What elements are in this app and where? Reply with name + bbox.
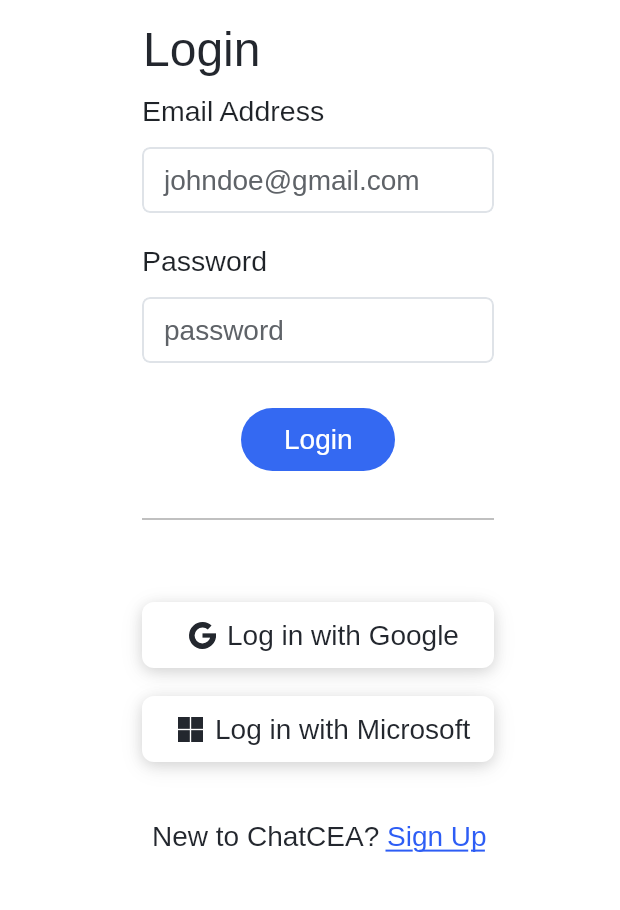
staticText: Login: [143, 23, 261, 77]
staticText: Password: [142, 245, 268, 277]
staticText: Log in with Microsoft: [215, 714, 471, 745]
staticText: Log in with Google: [227, 620, 459, 651]
staticText: johndoe@gmail.com: [164, 165, 420, 196]
staticText: Login: [284, 424, 353, 455]
other: Microsoft: [178, 717, 203, 742]
other: Google: [189, 622, 216, 649]
staticText: password: [164, 315, 284, 346]
button[interactable]: Login: [241, 408, 395, 471]
button[interactable]: Sign Up: [387, 821, 487, 852]
button[interactable]: Google: [142, 602, 494, 668]
staticText: New to ChatCEA?: [152, 821, 387, 852]
button[interactable]: Microsoft: [142, 696, 494, 762]
button[interactable]: johndoe@gmail.com: [142, 147, 494, 213]
staticText: Sign Up: [387, 821, 487, 852]
button[interactable]: password: [142, 297, 494, 363]
staticText: Email Address: [142, 95, 325, 127]
